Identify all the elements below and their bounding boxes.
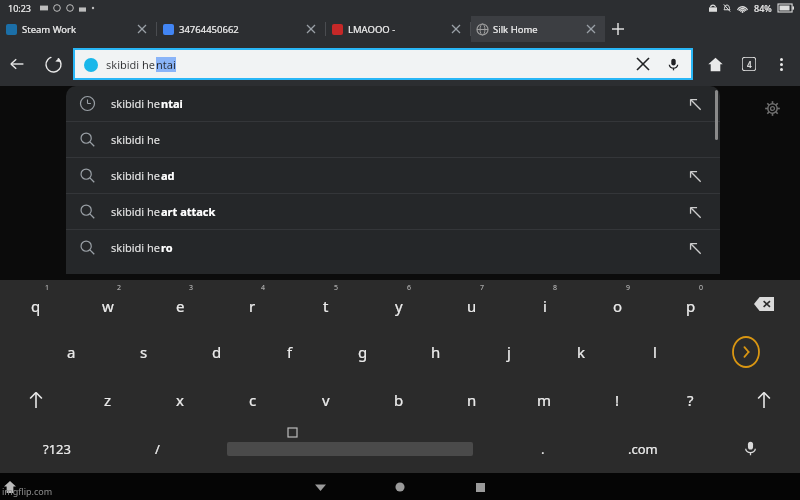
button[interactable]: n xyxy=(435,376,508,424)
button[interactable]: skibidi he xyxy=(74,49,692,79)
button[interactable]: l xyxy=(618,328,691,376)
button[interactable]: Fill suggestion xyxy=(684,93,706,115)
button[interactable]: Shift xyxy=(727,376,800,424)
button[interactable]: 9 xyxy=(581,280,654,328)
button[interactable]: Shift xyxy=(0,376,72,424)
button[interactable]: skibidi he xyxy=(66,230,720,265)
button[interactable]: Clear xyxy=(628,49,658,79)
staticText: r xyxy=(249,296,256,316)
staticText: 8 xyxy=(553,283,558,293)
button[interactable]: 8 xyxy=(508,280,581,328)
button[interactable]: 5 xyxy=(289,280,362,328)
button[interactable]: c xyxy=(216,376,289,424)
button[interactable]: Settings xyxy=(760,96,784,120)
staticText: skibidi he xyxy=(111,96,161,111)
button[interactable]: x xyxy=(144,376,216,424)
button[interactable]: Close tab xyxy=(448,21,464,37)
button[interactable]: Space xyxy=(200,424,500,473)
button[interactable]: Home xyxy=(389,476,411,498)
button[interactable]: Fill suggestion xyxy=(684,237,706,259)
button[interactable]: g xyxy=(326,328,399,376)
button[interactable]: ? xyxy=(654,376,727,424)
button[interactable]: skibidi he xyxy=(66,194,720,229)
button[interactable]: 3476445066299407086 (40 xyxy=(157,16,325,42)
button[interactable]: skibidi he xyxy=(66,86,720,121)
button[interactable]: .com xyxy=(586,424,700,473)
staticText: s xyxy=(140,342,148,362)
staticText: skibidi he xyxy=(111,132,161,147)
button[interactable]: Voice search xyxy=(658,49,688,79)
button[interactable]: Close tab xyxy=(303,21,319,37)
staticText: u xyxy=(467,296,477,316)
staticText: l xyxy=(653,342,657,362)
button[interactable]: Enter xyxy=(691,328,800,376)
button[interactable]: Back xyxy=(309,476,331,498)
button[interactable]: 0 xyxy=(654,280,727,328)
button[interactable]: ! xyxy=(581,376,654,424)
button[interactable]: . xyxy=(500,424,586,473)
staticText: n xyxy=(467,390,477,410)
button[interactable]: LMAOOO - Imgflip xyxy=(326,16,470,42)
staticText: skibidi he xyxy=(111,240,161,255)
button[interactable]: z xyxy=(72,376,144,424)
button[interactable]: Close tab xyxy=(583,21,599,37)
staticText: k xyxy=(577,342,586,362)
staticText: 4 xyxy=(261,283,266,293)
staticText: p xyxy=(686,296,696,316)
button[interactable]: skibidi he xyxy=(66,122,720,157)
staticText: d xyxy=(212,342,222,362)
button[interactable]: a xyxy=(35,328,107,376)
staticText: Silk Home xyxy=(493,23,538,36)
staticText: 9 xyxy=(626,283,631,293)
button[interactable]: 3 xyxy=(144,280,216,328)
button[interactable]: Backspace xyxy=(727,280,800,328)
button[interactable]: Home xyxy=(698,47,732,81)
staticText: y xyxy=(395,296,403,316)
button[interactable]: 4 xyxy=(216,280,289,328)
staticText: 6 xyxy=(407,283,412,293)
button[interactable]: h xyxy=(399,328,472,376)
staticText: 2 xyxy=(117,283,122,293)
staticText: w xyxy=(102,296,114,316)
staticText: ? xyxy=(687,390,694,410)
staticText: 3 xyxy=(189,283,194,293)
staticText: g xyxy=(358,342,368,362)
button[interactable]: 7 xyxy=(435,280,508,328)
staticText: 3476445066299407086 (40 xyxy=(179,23,241,36)
button[interactable]: New tab xyxy=(605,16,631,42)
button[interactable]: j xyxy=(472,328,545,376)
button[interactable]: 6 xyxy=(362,280,435,328)
button[interactable]: Close tab xyxy=(134,21,150,37)
button[interactable]: b xyxy=(362,376,435,424)
button[interactable]: ?123 xyxy=(0,424,114,473)
button[interactable]: Steam Workshop::help.bsp xyxy=(0,16,156,42)
staticText: 84% xyxy=(754,2,772,14)
button[interactable]: 2 xyxy=(72,280,144,328)
staticText: 10:23 xyxy=(8,2,32,14)
button[interactable]: Recents xyxy=(469,476,491,498)
staticText: j xyxy=(507,342,511,362)
button[interactable]: m xyxy=(508,376,581,424)
button[interactable]: v xyxy=(289,376,362,424)
button[interactable]: Fill suggestion xyxy=(684,165,706,187)
button[interactable]: Tabs xyxy=(732,47,766,81)
button[interactable]: 1 xyxy=(0,280,72,328)
button[interactable]: More options xyxy=(766,49,796,79)
button[interactable]: Voice input xyxy=(700,424,800,473)
button[interactable]: skibidi he xyxy=(66,158,720,193)
button[interactable]: Reload xyxy=(36,47,70,81)
button[interactable]: k xyxy=(545,328,618,376)
button[interactable]: Back xyxy=(0,47,34,81)
button[interactable]: s xyxy=(107,328,180,376)
button[interactable]: f xyxy=(253,328,326,376)
staticText: z xyxy=(104,390,112,410)
staticText: ntai xyxy=(161,96,183,111)
button[interactable]: / xyxy=(114,424,200,473)
staticText: o xyxy=(613,296,623,316)
button[interactable]: Silk Home xyxy=(471,16,605,42)
button[interactable]: Fill suggestion xyxy=(684,201,706,223)
staticText: 4 xyxy=(747,59,752,70)
button[interactable]: d xyxy=(180,328,253,376)
staticText: h xyxy=(431,342,441,362)
staticText: skibidi he xyxy=(111,204,161,219)
